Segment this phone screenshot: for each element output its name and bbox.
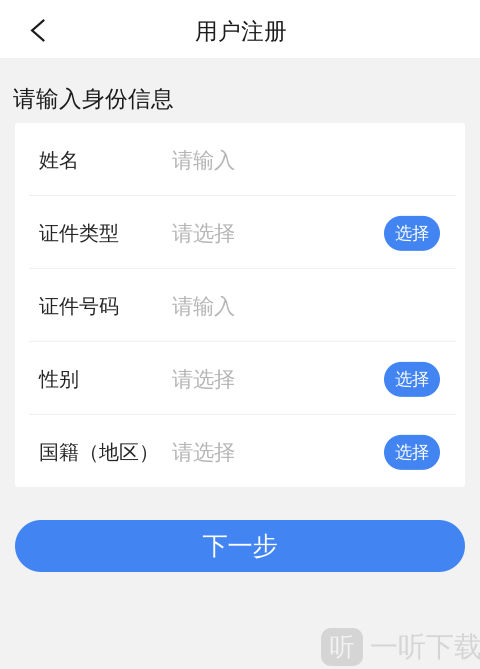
staticText: 国籍（地区）	[39, 440, 159, 465]
button[interactable]: Back	[0, 0, 65, 58]
staticText: 听	[329, 631, 354, 662]
staticText: 请选择	[172, 220, 235, 246]
staticText: 请输入身份信息	[13, 85, 174, 113]
staticText: 请选择	[172, 366, 235, 392]
staticText: 证件类型	[39, 221, 119, 246]
button[interactable]: 下一步	[15, 520, 465, 572]
staticText: 请输入	[172, 147, 235, 173]
staticText: 姓名	[39, 148, 79, 173]
staticText: 请输入	[172, 293, 235, 319]
staticText: 性别	[39, 367, 79, 392]
button[interactable]: 选择	[384, 216, 440, 251]
staticText: 选择	[395, 369, 429, 390]
button[interactable]: 证件类型	[15, 196, 465, 268]
button[interactable]: 国籍（地区）	[15, 415, 465, 487]
staticText: 用户注册	[195, 18, 287, 45]
button[interactable]: 选择	[384, 435, 440, 470]
staticText: 选择	[395, 223, 429, 244]
button[interactable]: 姓名	[15, 123, 465, 195]
button[interactable]: 性别	[15, 342, 465, 414]
staticText: 证件号码	[39, 294, 119, 319]
button[interactable]: 选择	[384, 362, 440, 397]
staticText: 下一步	[202, 530, 277, 561]
staticText: 选择	[395, 442, 429, 463]
button[interactable]: 证件号码	[15, 269, 465, 341]
staticText: 请选择	[172, 439, 235, 465]
staticText: 一听下载	[370, 630, 480, 664]
